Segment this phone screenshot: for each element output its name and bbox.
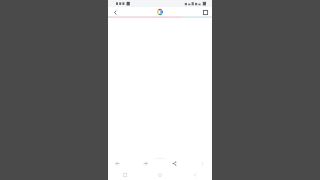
button[interactable]: Share	[169, 158, 180, 169]
button[interactable]: Forward	[140, 158, 151, 169]
button[interactable]: Back	[112, 158, 123, 169]
button[interactable]: Tabs	[201, 8, 209, 16]
button[interactable]: Back	[190, 170, 200, 180]
button[interactable]: Google	[156, 8, 164, 16]
button[interactable]: Back	[111, 8, 119, 16]
button[interactable]: Home	[155, 170, 165, 180]
button[interactable]: Recent apps	[120, 170, 130, 180]
button[interactable]: More options	[197, 158, 208, 169]
